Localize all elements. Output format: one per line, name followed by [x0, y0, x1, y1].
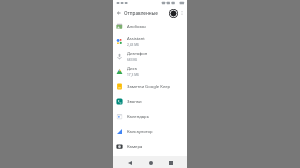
staticText: Календарь: [127, 114, 149, 120]
staticText: Альбомы: [127, 24, 146, 30]
button[interactable]: Камера: [113, 139, 187, 154]
button[interactable]: Back: [125, 158, 134, 167]
staticText: Заметки Google Keep: [127, 84, 171, 90]
button[interactable]: More options: [179, 10, 185, 16]
button[interactable]: Календарь: [113, 109, 187, 124]
button[interactable]: Back: [115, 9, 123, 17]
staticText: Диктофон: [127, 51, 148, 57]
button[interactable]: Assistant: [113, 34, 187, 49]
staticText: 17,3 МБ: [127, 73, 140, 77]
button[interactable]: Диск: [113, 64, 187, 79]
button[interactable]: Альбомы: [113, 19, 187, 34]
staticText: Отправленные: [124, 10, 158, 16]
button[interactable]: Recents: [166, 158, 175, 167]
staticText: Камера: [127, 144, 143, 150]
button[interactable]: Звонки: [113, 94, 187, 109]
staticText: Assistant: [127, 36, 145, 42]
staticText: Звонки: [127, 99, 142, 105]
button[interactable]: Home: [146, 158, 155, 167]
button[interactable]: Account: [168, 8, 178, 18]
button[interactable]: Заметки Google Keep: [113, 79, 187, 94]
staticText: Диск: [127, 66, 137, 72]
staticText: Калькулятор: [127, 129, 153, 135]
button[interactable]: Диктофон: [113, 49, 187, 64]
staticText: 2,43 МБ: [127, 43, 140, 47]
button[interactable]: Калькулятор: [113, 124, 187, 139]
staticText: 683 КБ: [127, 58, 138, 62]
